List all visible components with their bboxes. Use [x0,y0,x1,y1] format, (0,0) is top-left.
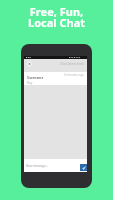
staticText: Username [27,76,44,80]
staticText: Hey [27,81,33,85]
button[interactable]: Send [80,164,87,171]
staticText: Free, Fun, Local Chat [0,4,113,31]
button[interactable]: Location [26,61,33,68]
button[interactable]: 3 minutes ago [24,72,87,85]
staticText: Chat latest feed [60,62,84,66]
button[interactable]: Location [24,59,87,69]
staticText: 3 minutes ago [64,73,85,77]
staticText: New message... [26,164,49,168]
